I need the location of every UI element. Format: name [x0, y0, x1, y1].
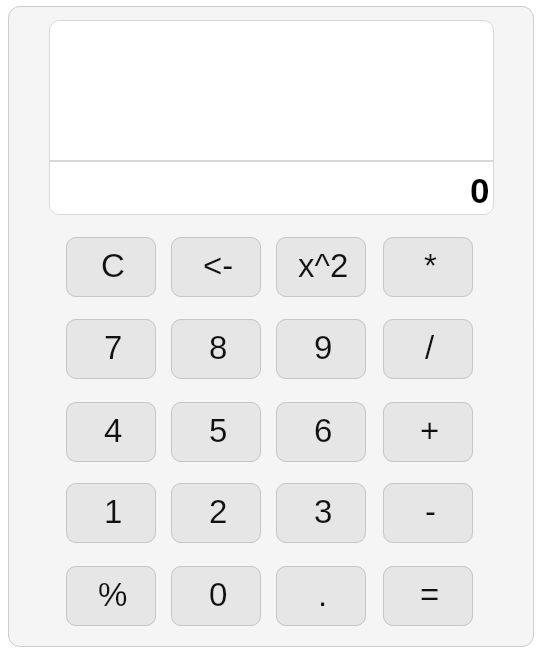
staticText: x^2: [298, 247, 349, 284]
button[interactable]: 2: [171, 483, 261, 543]
staticText: C: [101, 247, 125, 284]
button[interactable]: 5: [171, 402, 261, 462]
button[interactable]: 4: [66, 402, 156, 462]
staticText: 5: [209, 412, 228, 449]
staticText: -: [425, 493, 436, 530]
button[interactable]: +: [383, 402, 473, 462]
button[interactable]: /: [383, 319, 473, 379]
staticText: 7: [104, 329, 123, 366]
staticText: =: [420, 576, 440, 613]
button[interactable]: 3: [276, 483, 366, 543]
button[interactable]: -: [383, 483, 473, 543]
button[interactable]: C: [66, 237, 156, 297]
staticText: 0: [209, 576, 228, 613]
staticText: *: [424, 247, 437, 284]
button[interactable]: =: [383, 566, 473, 626]
staticText: %: [98, 576, 128, 613]
button[interactable]: <-: [171, 237, 261, 297]
button[interactable]: 8: [171, 319, 261, 379]
staticText: 0: [470, 171, 490, 210]
staticText: /: [425, 329, 435, 366]
staticText: 6: [314, 412, 333, 449]
button[interactable]: 6: [276, 402, 366, 462]
staticText: 4: [104, 412, 123, 449]
button[interactable]: 0: [171, 566, 261, 626]
staticText: 2: [209, 493, 228, 530]
button[interactable]: 7: [66, 319, 156, 379]
button[interactable]: x^2: [276, 237, 366, 297]
staticText: 8: [209, 329, 228, 366]
staticText: 9: [314, 329, 333, 366]
staticText: 1: [104, 493, 123, 530]
staticText: +: [420, 412, 440, 449]
button[interactable]: 1: [66, 483, 156, 543]
staticText: <-: [203, 247, 234, 284]
button[interactable]: 9: [276, 319, 366, 379]
button[interactable]: *: [383, 237, 473, 297]
button[interactable]: .: [276, 566, 366, 626]
staticText: 3: [314, 493, 333, 530]
button[interactable]: %: [66, 566, 156, 626]
staticText: .: [318, 576, 328, 613]
